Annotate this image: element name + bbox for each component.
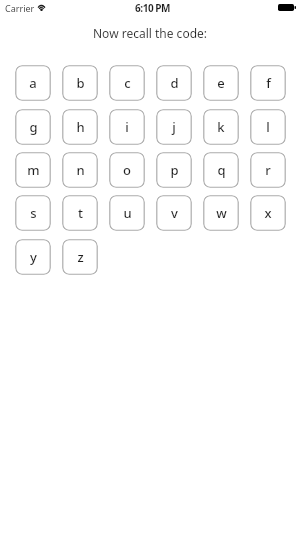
staticText: l [266,118,270,136]
button[interactable]: v [156,195,192,231]
staticText: t [78,204,83,222]
button[interactable]: o [109,152,145,188]
staticText: o [123,161,131,179]
staticText: i [125,118,129,136]
button[interactable]: h [62,109,98,145]
staticText: Now recall the code: [93,25,208,41]
staticText: x [264,204,272,222]
staticText: r [265,161,271,179]
button[interactable]: n [62,152,98,188]
button[interactable]: x [250,195,286,231]
staticText: d [170,74,179,92]
staticText: f [266,74,271,92]
button[interactable]: y [15,239,51,275]
button[interactable]: s [15,195,51,231]
staticText: Carrier [5,2,35,14]
button[interactable]: b [62,65,98,101]
other: Wi-Fi signal [37,5,46,11]
staticText: w [216,204,227,222]
button[interactable]: t [62,195,98,231]
staticText: p [170,161,179,179]
staticText: g [29,118,38,136]
staticText: h [76,118,85,136]
button[interactable]: j [156,109,192,145]
button[interactable]: w [203,195,239,231]
button[interactable]: k [203,109,239,145]
staticText: m [27,161,40,179]
staticText: 6:10 PM [135,1,171,15]
button[interactable]: z [62,239,98,275]
staticText: q [217,161,226,179]
button[interactable]: q [203,152,239,188]
button[interactable]: e [203,65,239,101]
button[interactable]: u [109,195,145,231]
staticText: e [217,74,225,92]
button[interactable]: i [109,109,145,145]
staticText: y [30,248,37,266]
staticText: b [76,74,85,92]
button[interactable]: l [250,109,286,145]
staticText: j [172,118,176,136]
staticText: n [76,161,85,179]
staticText: s [30,204,37,222]
staticText: k [217,118,225,136]
staticText: u [123,204,132,222]
button[interactable]: f [250,65,286,101]
button[interactable]: a [15,65,51,101]
button[interactable]: c [109,65,145,101]
other: Battery full [278,4,296,11]
button[interactable]: m [15,152,51,188]
staticText: v [171,204,178,222]
staticText: a [29,74,37,92]
button[interactable]: d [156,65,192,101]
button[interactable]: g [15,109,51,145]
staticText: z [77,248,84,266]
button[interactable]: r [250,152,286,188]
button[interactable]: p [156,152,192,188]
staticText: c [124,74,131,92]
